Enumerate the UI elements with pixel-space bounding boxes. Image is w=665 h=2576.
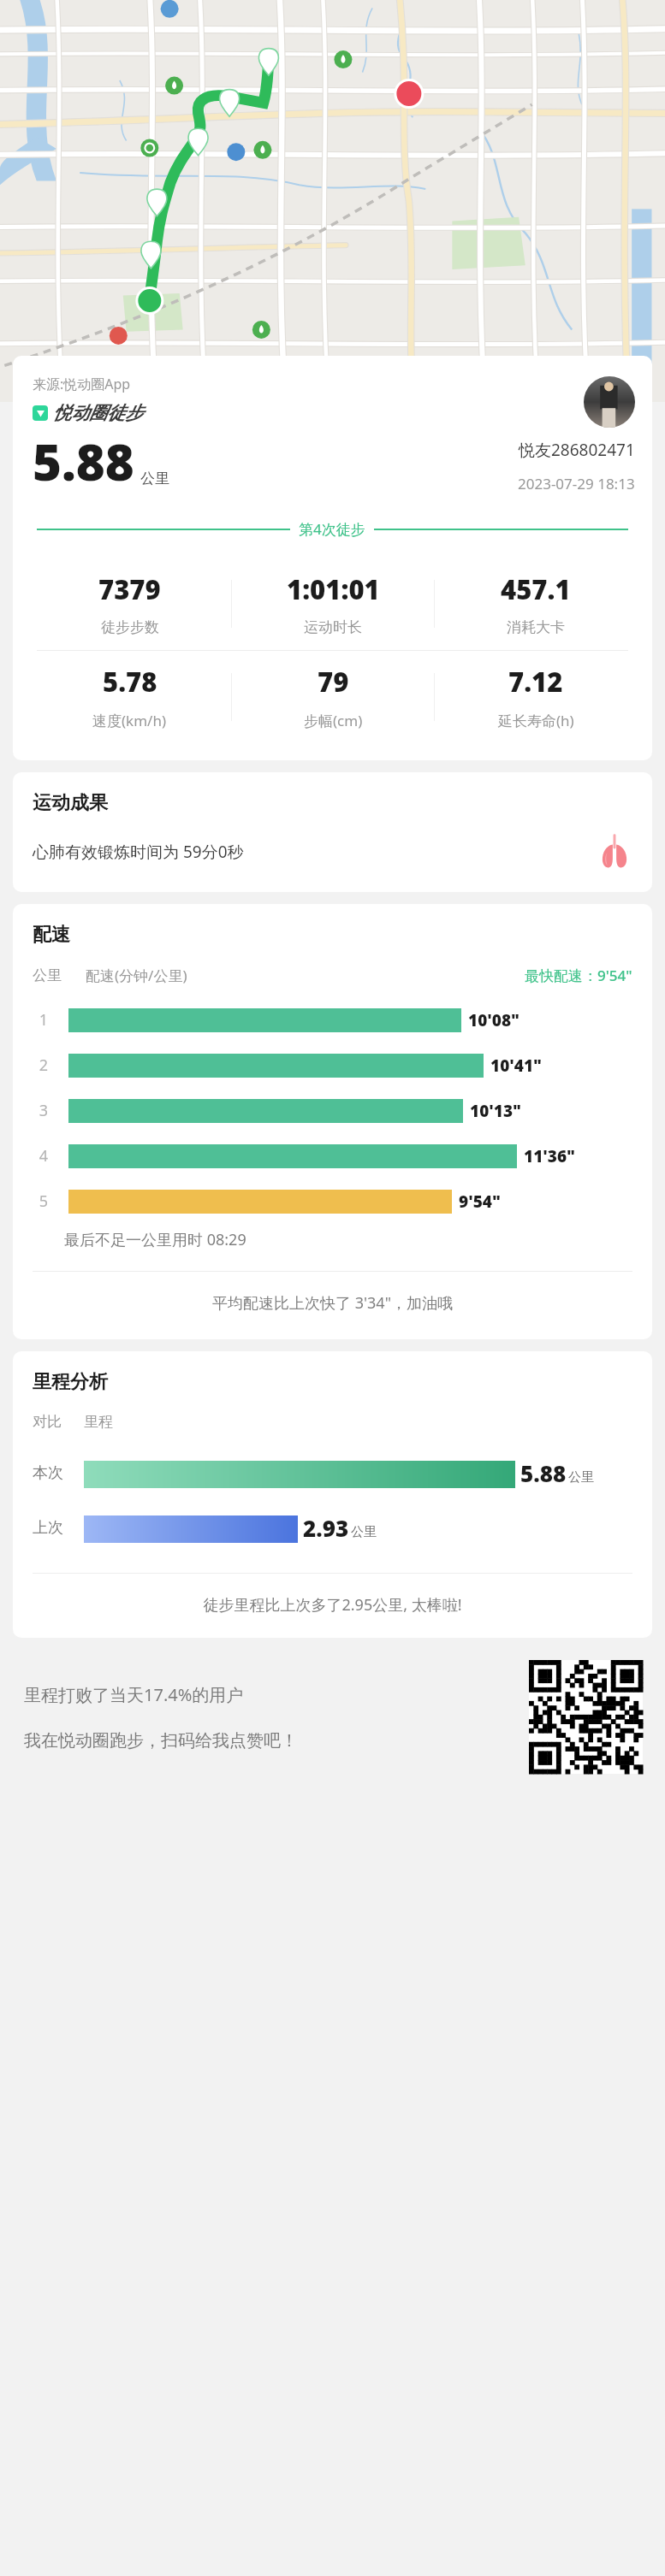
staticText: 消耗大卡 — [507, 618, 565, 636]
staticText: 2.93 — [303, 1513, 349, 1543]
button[interactable]: User avatar — [584, 376, 635, 428]
staticText: 5 — [33, 1191, 55, 1212]
staticText: 最快配速：9'54" — [525, 966, 632, 985]
staticText: 步幅(cm) — [304, 711, 363, 730]
staticText: 心肺有效锻炼时间为 59分0秒 — [33, 841, 597, 863]
staticText: 运动时长 — [304, 618, 362, 636]
staticText: 10'13" — [470, 1100, 522, 1122]
staticText: 我在悦动圈跑步，扫码给我点赞吧！ — [24, 1730, 298, 1752]
staticText: 10'08" — [468, 1009, 520, 1031]
staticText: 2 — [33, 1055, 55, 1076]
button[interactable]: QR code — [529, 1660, 643, 1774]
staticText: 里程打败了当天17.4%的用户 — [24, 1683, 244, 1706]
staticText: 悦动圈徒步 — [53, 402, 143, 424]
staticText: 4 — [33, 1145, 55, 1167]
staticText: 11'36" — [524, 1145, 576, 1167]
staticText: 徒步步数 — [101, 618, 159, 636]
staticText: 里程 — [84, 1413, 113, 1431]
staticText: 里程分析 — [33, 1370, 108, 1394]
button[interactable]: 运动成果 — [13, 772, 652, 892]
staticText: 5.88 — [520, 1458, 567, 1488]
staticText: 平均配速比上次快了 3'34"，加油哦 — [13, 1292, 652, 1314]
staticText: 延长寿命(h) — [498, 711, 574, 730]
other: Route map — [0, 0, 665, 402]
staticText: 公里 — [351, 1524, 377, 1540]
staticText: 徒步里程比上次多了2.95公里, 太棒啦! — [13, 1594, 652, 1616]
staticText: 运动成果 — [33, 791, 108, 815]
button[interactable]: 里程分析 — [13, 1351, 652, 1638]
staticText: 第4次徒步 — [299, 519, 365, 539]
staticText: 上次 — [33, 1518, 72, 1538]
staticText: 457.1 — [501, 571, 571, 607]
staticText: 本次 — [33, 1463, 72, 1483]
staticText: 5.88 — [33, 428, 134, 495]
staticText: 10'41" — [490, 1055, 543, 1077]
other: Lungs — [597, 834, 632, 870]
staticText: 1:01:01 — [287, 571, 380, 607]
staticText: 1 — [33, 1009, 55, 1031]
staticText: 2023-07-29 18:13 — [518, 474, 635, 493]
staticText: 对比 — [33, 1413, 62, 1431]
staticText: 来源:悦动圈App — [33, 375, 131, 393]
staticText: 9'54" — [459, 1191, 501, 1213]
staticText: 5.78 — [103, 664, 157, 700]
button[interactable]: 来源:悦动圈App — [13, 356, 652, 760]
staticText: 悦友286802471 — [519, 439, 635, 461]
staticText: 公里 — [140, 470, 169, 487]
staticText: 7.12 — [508, 664, 563, 700]
staticText: 79 — [318, 664, 349, 700]
staticText: 公里 — [33, 966, 62, 984]
staticText: 配速 — [33, 923, 70, 947]
staticText: 最后不足一公里用时 08:29 — [64, 1229, 246, 1250]
staticText: 7379 — [98, 571, 161, 607]
staticText: 配速(分钟/公里) — [86, 966, 187, 985]
button[interactable]: 配速 — [13, 904, 652, 1339]
staticText: 3 — [33, 1100, 55, 1121]
staticText: 公里 — [568, 1469, 594, 1486]
staticText: 速度(km/h) — [92, 711, 167, 730]
